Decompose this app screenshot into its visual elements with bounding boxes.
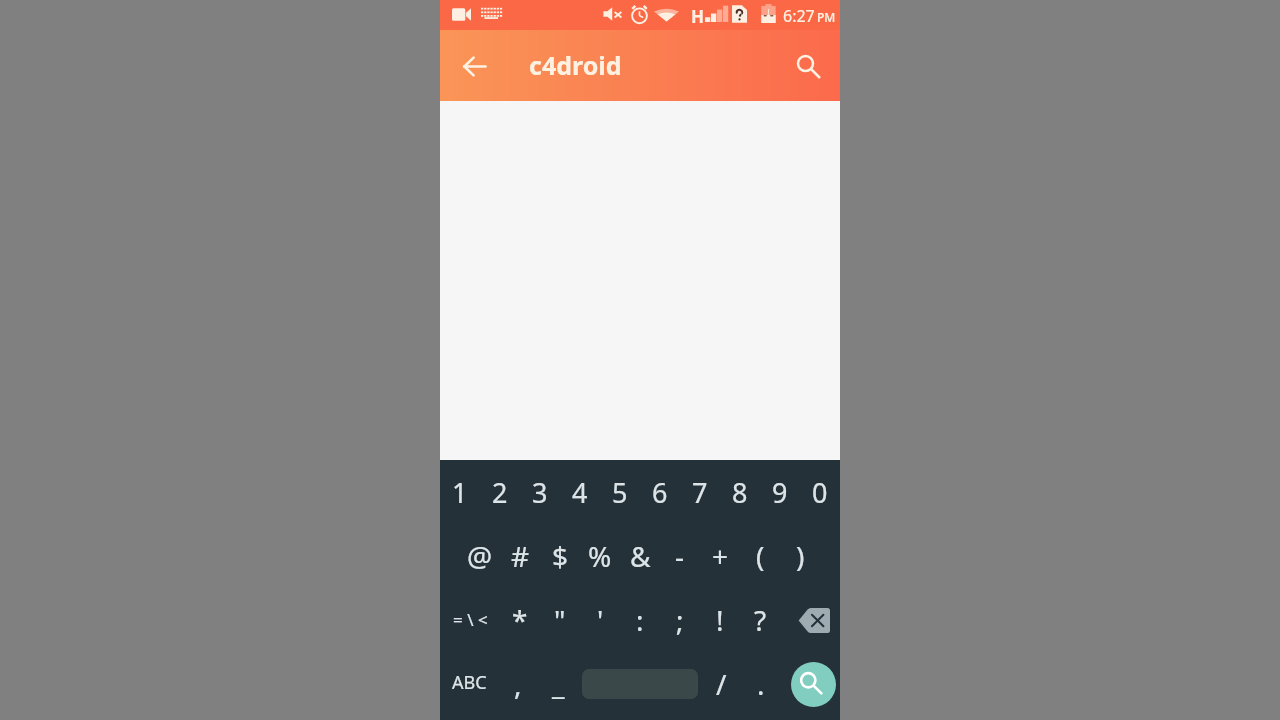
staticText: 2 [492,474,508,511]
button[interactable]: & [620,524,660,588]
staticText: . [757,665,765,703]
staticText: = \ < [453,608,488,631]
staticText: _ [552,665,565,703]
button[interactable]: , [498,652,538,716]
staticText: 8 [732,474,748,511]
staticText: 6:27 [783,5,815,27]
button[interactable]: ' [580,588,620,652]
button[interactable]: 5 [600,460,640,524]
button[interactable]: 9 [760,460,800,524]
button[interactable]: $ [540,524,580,588]
button[interactable]: 1 [440,460,480,524]
staticText: H [691,5,705,28]
button[interactable]: " [540,588,580,652]
staticText: $ [552,537,569,575]
button[interactable]: 0 [800,460,840,524]
staticText: - [675,537,685,575]
button[interactable]: 7 [680,460,720,524]
staticText: ' [597,601,604,639]
button[interactable]: _ [538,652,578,716]
button[interactable]: ( [740,524,780,588]
staticText: ) [796,537,805,575]
button[interactable]: . [741,652,781,716]
button[interactable]: Back [450,42,498,90]
staticText: PM [817,9,836,25]
button[interactable]: + [700,524,740,588]
staticText: % [588,537,612,575]
staticText: 1 [452,474,468,511]
staticText: * [512,601,528,639]
staticText: + [712,537,729,575]
button[interactable]: % [580,524,620,588]
button[interactable]: ! [700,588,740,652]
button[interactable]: - [660,524,700,588]
button[interactable]: 3 [520,460,560,524]
button[interactable]: ) [780,524,820,588]
button[interactable]: : [620,588,660,652]
button[interactable]: 6 [640,460,680,524]
staticText: 6 [652,474,668,511]
staticText: ( [756,537,765,575]
staticText: : [636,601,644,639]
staticText: / [716,665,727,703]
staticText: c4droid [529,48,622,82]
button[interactable]: Space [578,652,701,716]
staticText: 9 [772,474,788,511]
staticText: 5 [612,474,628,511]
staticText: 3 [532,474,548,511]
staticText: @ [467,537,493,575]
staticText: & [630,537,651,575]
button[interactable]: 4 [560,460,600,524]
staticText: ; [676,601,684,639]
staticText: ABC [452,670,487,695]
button[interactable]: / [701,652,741,716]
button[interactable]: @ [460,524,500,588]
staticText: # [511,537,530,575]
button[interactable]: Delete [780,588,840,652]
button[interactable]: = \ < [440,588,500,652]
button[interactable]: ; [660,588,700,652]
button[interactable]: Search [791,662,836,707]
staticText: ! [716,601,724,639]
button[interactable]: # [500,524,540,588]
button[interactable]: ? [740,588,780,652]
button[interactable]: 2 [480,460,520,524]
button[interactable]: 8 [720,460,760,524]
button[interactable]: Search [784,42,832,90]
staticText: 0 [812,474,828,511]
staticText: 7 [692,474,708,511]
staticText: 4 [572,474,588,511]
staticText: , [514,665,522,703]
button[interactable]: * [500,588,540,652]
staticText: ? [754,601,767,639]
staticText: " [554,601,566,639]
button[interactable]: ABC [440,652,498,716]
